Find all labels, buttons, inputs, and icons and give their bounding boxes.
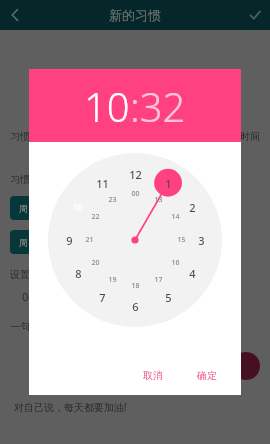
staticText: 4 (189, 266, 196, 281)
button[interactable]: Back (0, 0, 30, 30)
staticText: 周 (83, 237, 92, 248)
staticText: 习惯名称 (10, 130, 50, 143)
staticText: 6 (132, 299, 139, 314)
staticText: 15 (177, 235, 186, 245)
staticText: 23 (108, 195, 117, 205)
staticText: 00:00 (22, 289, 51, 304)
staticText: 13 (154, 195, 163, 205)
button[interactable]: 周 (42, 196, 68, 220)
staticText: 14 (171, 212, 180, 222)
staticText: 19 (108, 275, 117, 285)
button[interactable]: 周 (10, 230, 36, 254)
staticText: 3 (198, 233, 205, 248)
staticText: 10 (84, 79, 130, 133)
staticText: 周 (19, 237, 28, 248)
button[interactable]: 10 (29, 69, 241, 142)
staticText: 确定 (197, 369, 217, 382)
button[interactable]: Add (232, 352, 260, 380)
staticText: 周 (19, 203, 28, 214)
button[interactable]: 取消 (131, 363, 175, 388)
staticText: 17 (154, 275, 163, 285)
staticText: 1 (165, 176, 172, 191)
button[interactable]: 周 (106, 196, 132, 220)
button[interactable]: 周 (74, 196, 100, 220)
staticText: 时间 (240, 130, 260, 143)
staticText: :32 (130, 79, 186, 133)
staticText: 一句话激励 (10, 320, 60, 333)
staticText: 11 (96, 176, 109, 191)
button[interactable]: 确定 (185, 363, 229, 388)
staticText: 5 (165, 290, 172, 305)
staticText: 取消 (143, 369, 163, 382)
staticText: 10 (73, 202, 83, 213)
button[interactable]: 周 (74, 230, 100, 254)
staticText: 20 (91, 258, 100, 268)
button[interactable]: 周 (10, 196, 36, 220)
staticText: 设置提醒 (10, 268, 50, 281)
staticText: 12 (129, 167, 142, 182)
staticText: 8 (75, 266, 82, 281)
staticText: 2 (189, 200, 196, 215)
staticText: 对自己说，每天都要加油! (14, 400, 127, 414)
staticText: 16 (171, 258, 180, 268)
staticText: 新的习惯 (109, 7, 161, 23)
staticText: 周 (51, 203, 60, 214)
staticText: 18 (131, 281, 140, 291)
staticText: 7 (99, 290, 106, 305)
button[interactable]: 周 (42, 230, 68, 254)
staticText: 21 (85, 235, 94, 245)
staticText: 9 (66, 233, 73, 248)
staticText: 22 (91, 212, 100, 222)
staticText: 00 (131, 189, 140, 199)
button[interactable]: Save (240, 0, 270, 30)
staticText: 习惯周期 (10, 173, 50, 186)
